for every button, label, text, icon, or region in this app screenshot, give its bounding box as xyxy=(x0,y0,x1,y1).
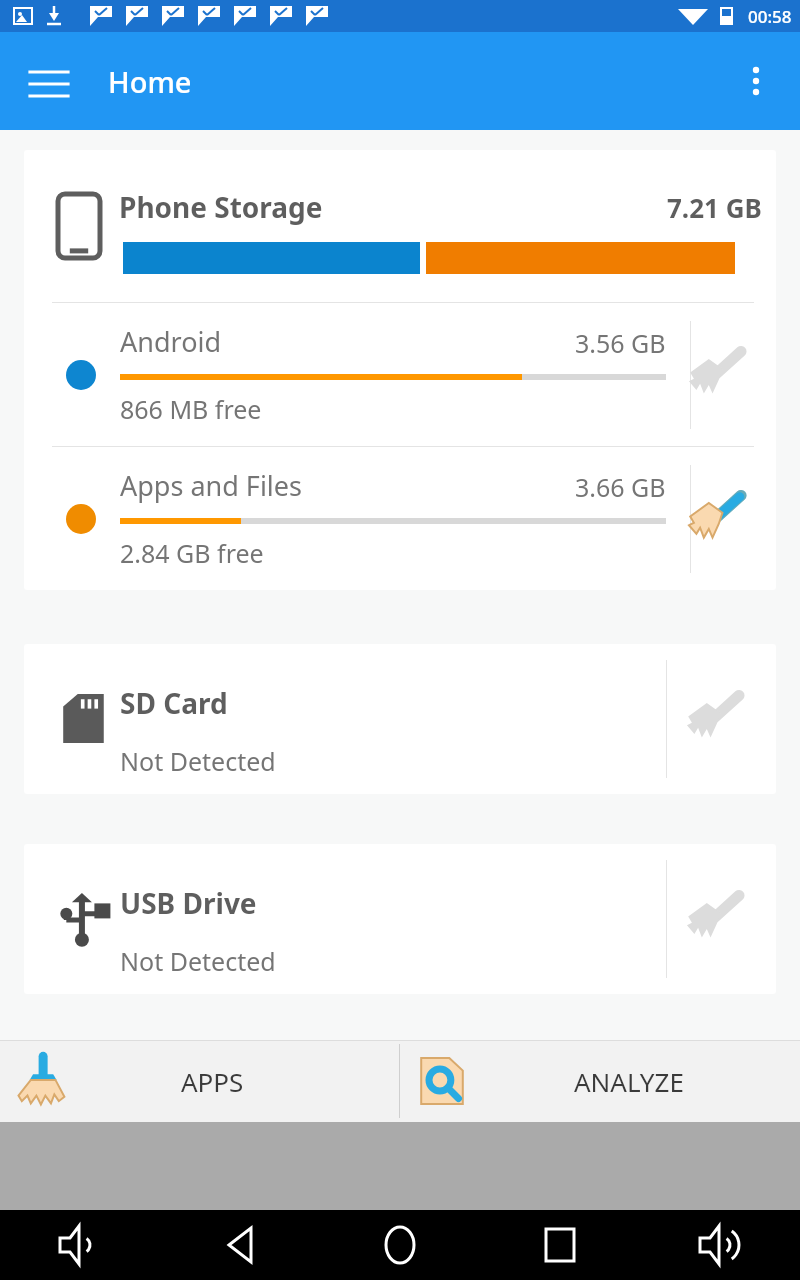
button[interactable]: Android xyxy=(24,303,776,446)
button[interactable]: Clean xyxy=(684,488,746,550)
staticText: 3.56 GB xyxy=(575,326,666,360)
button[interactable]: Clean disabled xyxy=(684,344,746,406)
button[interactable]: Open navigation drawer xyxy=(18,50,80,112)
staticText: 00:58 xyxy=(748,5,792,28)
button[interactable]: More options xyxy=(728,53,784,109)
staticText: SD Card xyxy=(120,684,228,722)
button[interactable]: Clean xyxy=(682,888,744,950)
button[interactable]: USB Drive xyxy=(24,844,776,994)
staticText: Apps and Files xyxy=(120,467,575,504)
staticText: Not Detected xyxy=(120,744,276,778)
staticText: 2.84 GB free xyxy=(120,536,264,570)
staticText: ANALYZE xyxy=(574,1064,684,1099)
button[interactable]: APPS xyxy=(0,1040,399,1122)
button[interactable]: ANALYZE xyxy=(400,1040,800,1122)
staticText: Phone Storage xyxy=(119,188,323,226)
staticText: Android xyxy=(120,323,575,360)
staticText: 866 MB free xyxy=(120,392,262,426)
staticText: 7.21 GB xyxy=(667,190,762,225)
button[interactable]: Clean xyxy=(682,688,744,750)
button[interactable]: Apps and Files xyxy=(24,447,776,590)
staticText: 3.66 GB xyxy=(575,470,666,504)
staticText: Home xyxy=(108,62,192,101)
staticText: USB Drive xyxy=(120,884,257,922)
staticText: APPS xyxy=(181,1064,244,1099)
button[interactable]: SD Card xyxy=(24,644,776,794)
staticText: Not Detected xyxy=(120,944,276,978)
